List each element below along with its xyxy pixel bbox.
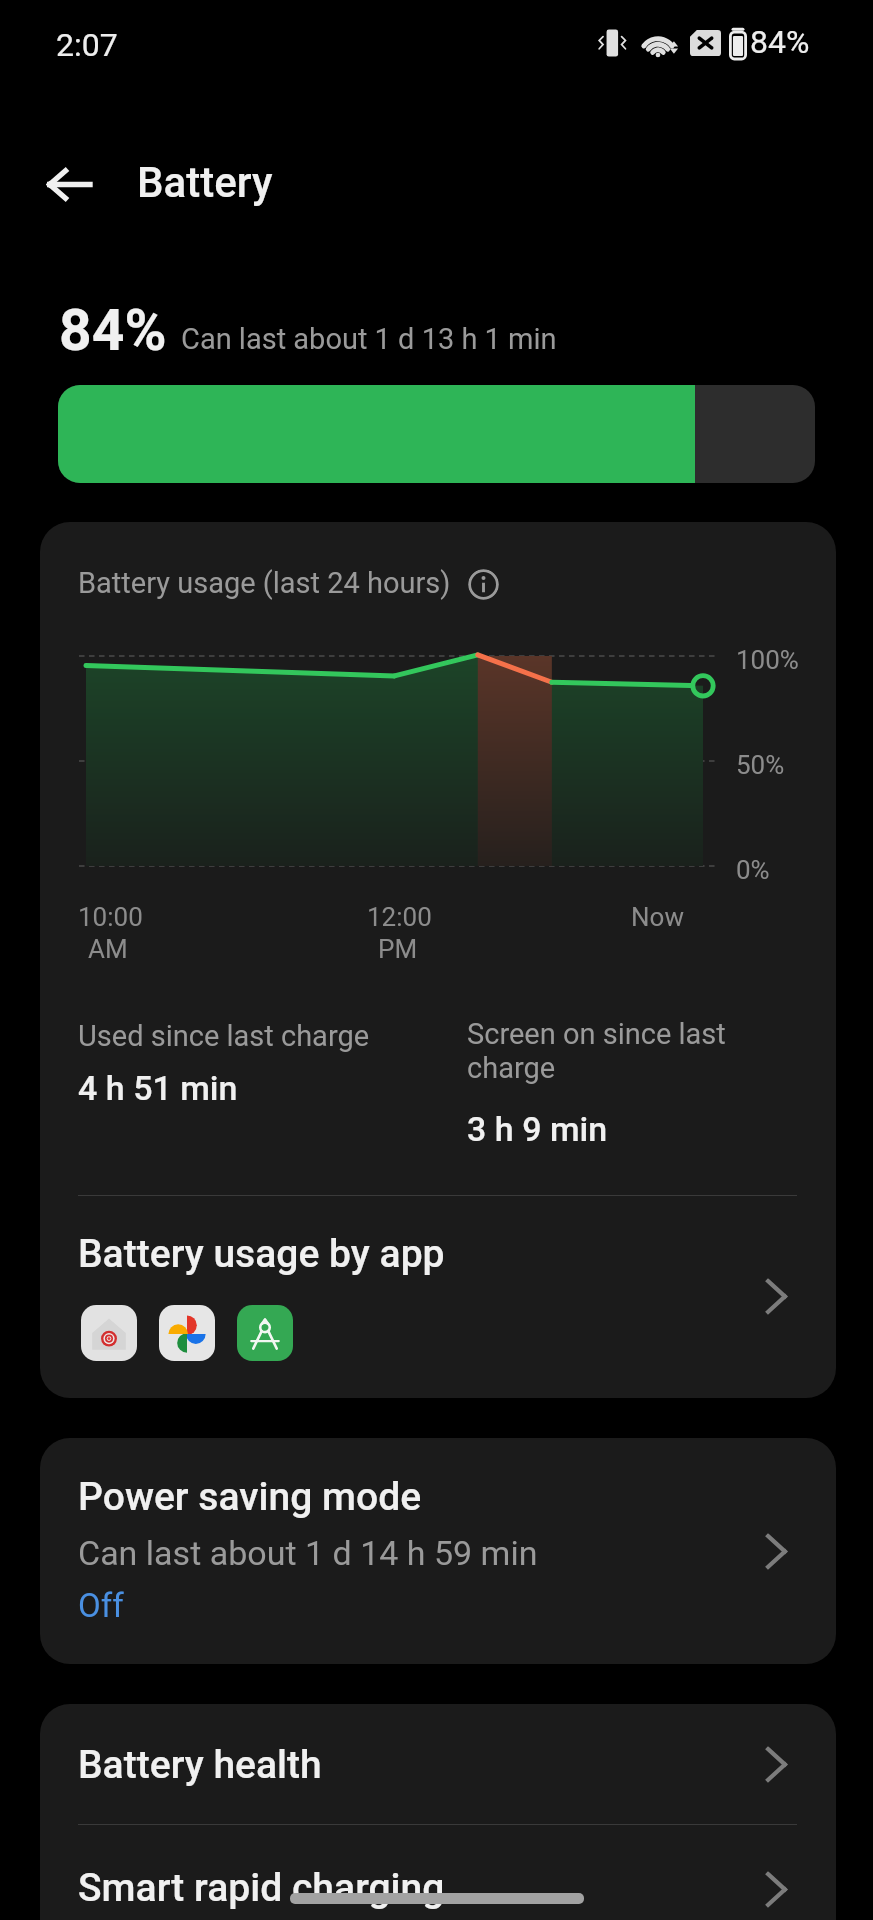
- staticText: 84%: [59, 297, 167, 364]
- staticText: 50%: [736, 750, 785, 780]
- staticText: Off: [78, 1586, 124, 1625]
- staticText: 4 h 51 min: [78, 1068, 238, 1108]
- staticText: 10:00: [78, 902, 143, 932]
- button[interactable]: Battery usage by app: [40, 1197, 836, 1398]
- button[interactable]: Smart rapid charging: [40, 1826, 836, 1920]
- staticText: Can last about 1 d 13 h 1 min: [181, 322, 557, 356]
- staticText: Used since last charge: [78, 1019, 370, 1053]
- button[interactable]: About battery usage: [468, 569, 499, 600]
- staticText: Battery usage by app: [78, 1231, 445, 1277]
- staticText: Battery usage (last 24 hours): [78, 566, 451, 600]
- staticText: Power saving mode: [78, 1474, 422, 1520]
- staticText: Can last about 1 d 14 h 59 min: [78, 1533, 538, 1573]
- staticText: Now: [631, 902, 684, 932]
- staticText: Smart rapid charging: [78, 1865, 445, 1911]
- staticText: 2:07: [56, 26, 118, 64]
- staticText: PM: [378, 934, 418, 964]
- staticText: 100%: [736, 645, 799, 675]
- staticText: 12:00: [367, 902, 432, 932]
- staticText: 3 h 9 min: [467, 1109, 608, 1149]
- staticText: 0%: [736, 855, 770, 885]
- button[interactable]: Battery health: [40, 1704, 836, 1824]
- staticText: AM: [88, 934, 128, 964]
- staticText: Battery: [137, 158, 273, 207]
- staticText: Screen on since last charge: [467, 1017, 744, 1085]
- staticText: 84%: [750, 23, 810, 61]
- button[interactable]: Power saving mode: [40, 1438, 836, 1664]
- staticText: Battery health: [78, 1742, 322, 1788]
- button[interactable]: Back: [28, 144, 108, 224]
